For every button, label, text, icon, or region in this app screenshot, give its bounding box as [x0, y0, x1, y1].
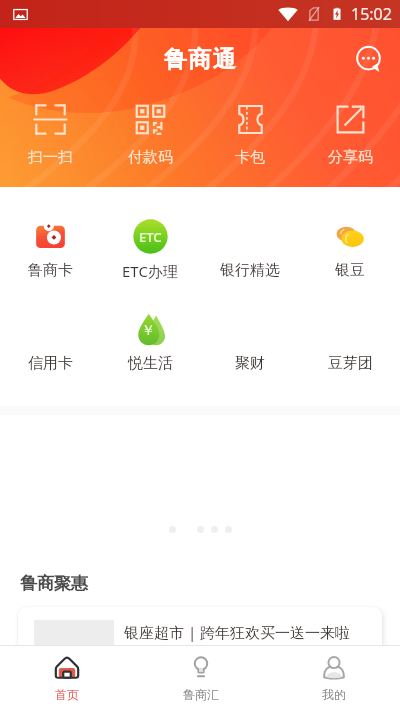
staticText: 分享码 [328, 148, 373, 167]
button[interactable]: 聚财 [200, 312, 300, 373]
staticText: 首页 [55, 687, 79, 702]
staticText: ￥ [141, 322, 155, 340]
button[interactable]: 卡包 [200, 103, 300, 167]
staticText: 信用卡 [28, 354, 73, 373]
button[interactable]: 银行精选 [200, 219, 300, 280]
button[interactable]: 鲁商卡 [0, 219, 100, 280]
staticText: 15:02 [351, 3, 392, 25]
button[interactable]: 付款码 [100, 103, 200, 167]
button[interactable]: Messages [355, 46, 382, 73]
button[interactable]: 我的 [267, 646, 400, 711]
staticText: 卡包 [235, 148, 265, 167]
button[interactable]: 鲁商汇 [134, 646, 267, 711]
staticText: 悦生活 [128, 354, 173, 373]
staticText: 银行精选 [220, 261, 280, 280]
staticText: 付款码 [128, 148, 173, 167]
staticText: 鲁商聚惠 [20, 573, 88, 594]
button[interactable]: 扫一扫 [0, 103, 100, 167]
staticText: 鲁商通 [164, 45, 237, 74]
staticText: 聚财 [235, 354, 265, 373]
button[interactable]: 银座超市 | 跨年狂欢买一送一来啦 [18, 607, 382, 645]
button[interactable]: 首页 [0, 646, 134, 711]
staticText: ETC [139, 228, 162, 246]
button[interactable]: 分享码 [300, 103, 400, 167]
staticText: 扫一扫 [28, 148, 73, 167]
staticText: 豆芽团 [328, 354, 373, 373]
staticText: 银豆 [335, 261, 365, 280]
button[interactable]: ETC [100, 219, 200, 281]
staticText: 鲁商卡 [28, 261, 73, 280]
button[interactable]: ￥ [100, 312, 200, 373]
button[interactable]: 豆芽团 [300, 312, 400, 373]
button[interactable]: 银豆 [300, 219, 400, 280]
staticText: 鲁商汇 [183, 687, 219, 702]
staticText: 我的 [322, 687, 346, 702]
staticText: 银座超市 | 跨年狂欢买一送一来啦 [124, 622, 351, 642]
staticText: ETC办理 [122, 261, 178, 281]
button[interactable]: 信用卡 [0, 312, 100, 373]
